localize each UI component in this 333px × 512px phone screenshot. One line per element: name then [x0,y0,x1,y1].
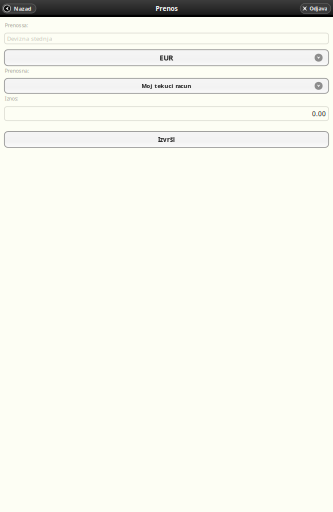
staticText: Prenos sa: [5,22,28,29]
staticText: Prenos [155,4,177,13]
button[interactable]: Moj tekuci racun [4,78,329,93]
button[interactable]: Nazad [2,4,36,13]
button[interactable]: Izvrši [4,131,329,147]
button[interactable]: EUR [4,50,329,66]
staticText: Izvrši [158,135,175,144]
staticText: Iznos: [5,95,18,102]
button[interactable]: Odjava [300,3,331,14]
staticText: 0.00 [312,109,326,118]
staticText: Devizna stednja [7,34,52,42]
staticText: Moj tekuci racun [141,82,191,90]
staticText: Nazad [14,5,32,12]
staticText: Prenos na: [5,67,29,74]
staticText: Odjava [309,5,327,12]
staticText: EUR [159,53,173,63]
